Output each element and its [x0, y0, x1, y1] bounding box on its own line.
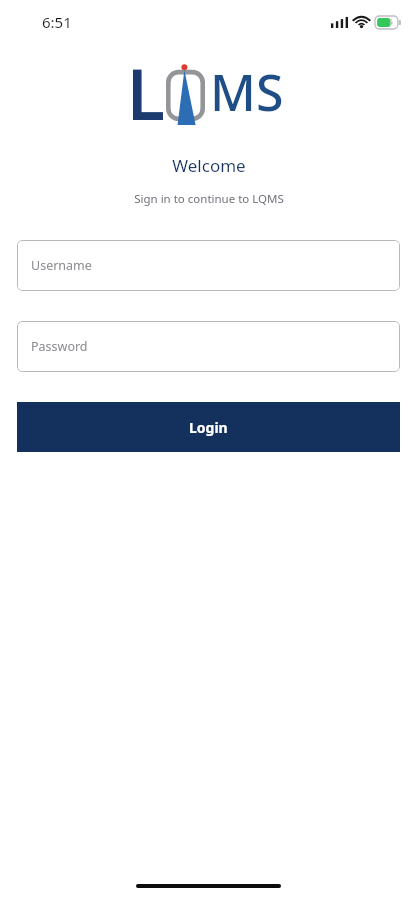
- button[interactable]: Username: [17, 240, 400, 291]
- button[interactable]: Password: [17, 321, 400, 372]
- button[interactable]: Login: [17, 402, 400, 452]
- staticText: Sign in to continue to LQMS: [134, 191, 284, 207]
- staticText: MS: [210, 58, 284, 126]
- staticText: Welcome: [172, 154, 246, 177]
- staticText: Username: [31, 257, 92, 274]
- staticText: Password: [31, 338, 88, 355]
- staticText: 6:51: [42, 12, 72, 32]
- staticText: Login: [189, 418, 228, 437]
